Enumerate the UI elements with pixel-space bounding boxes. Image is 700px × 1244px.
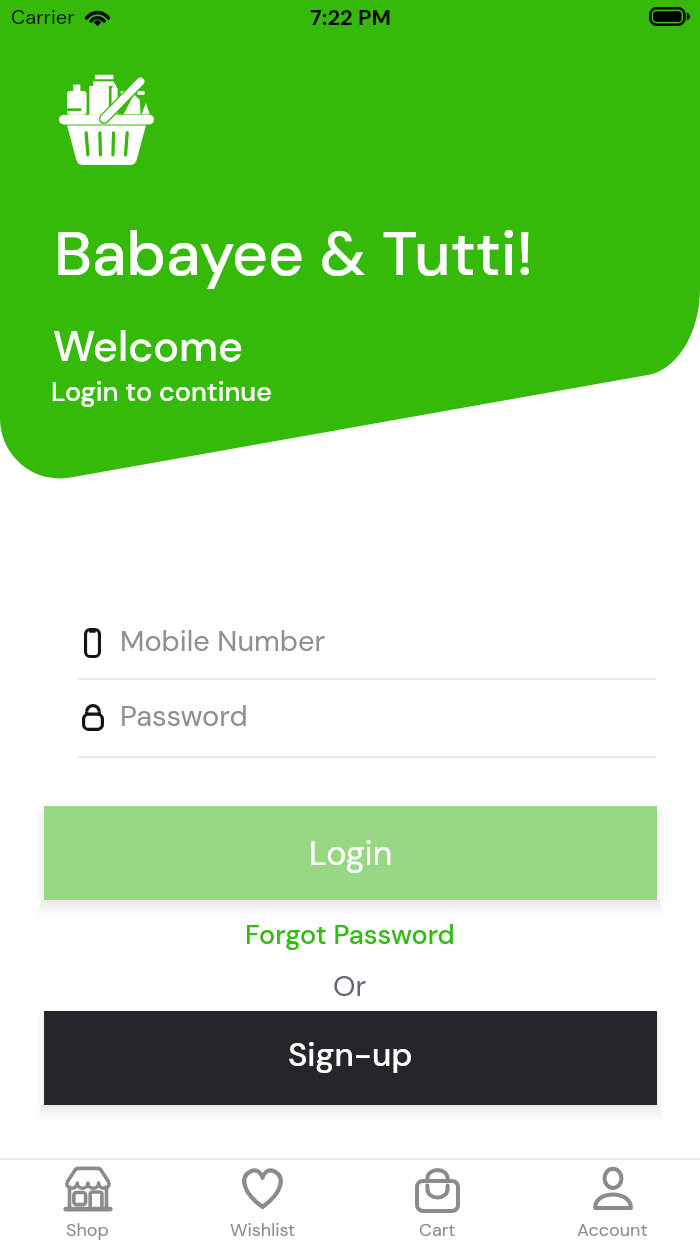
staticText: Login to continue (51, 374, 272, 409)
button[interactable]: Sign-up (44, 1011, 657, 1105)
staticText: Password (120, 697, 248, 735)
staticText: 7:22 PM (310, 3, 391, 32)
staticText: Carrier (11, 4, 75, 30)
button[interactable]: Cart (350, 1160, 525, 1244)
button[interactable]: Login (44, 806, 657, 900)
staticText: Wishlist (230, 1218, 296, 1241)
staticText: Or (333, 967, 367, 1005)
button[interactable]: Mobile number field (78, 610, 656, 680)
staticText: Shop (66, 1218, 109, 1241)
staticText: Cart (419, 1218, 456, 1241)
button[interactable]: Account (525, 1160, 700, 1244)
staticText: Account (577, 1218, 648, 1241)
staticText: Mobile Number (120, 622, 326, 660)
button[interactable]: App logo (59, 72, 154, 165)
staticText: Babayee & Tutti! (54, 213, 534, 294)
button[interactable]: Forgot Password (235, 913, 465, 956)
button[interactable]: Shop (0, 1160, 175, 1244)
button[interactable]: Password field (78, 688, 656, 758)
button[interactable]: Wishlist (175, 1160, 350, 1244)
staticText: Login (309, 831, 393, 875)
staticText: Welcome (53, 318, 243, 374)
staticText: Sign-up (288, 1033, 413, 1076)
